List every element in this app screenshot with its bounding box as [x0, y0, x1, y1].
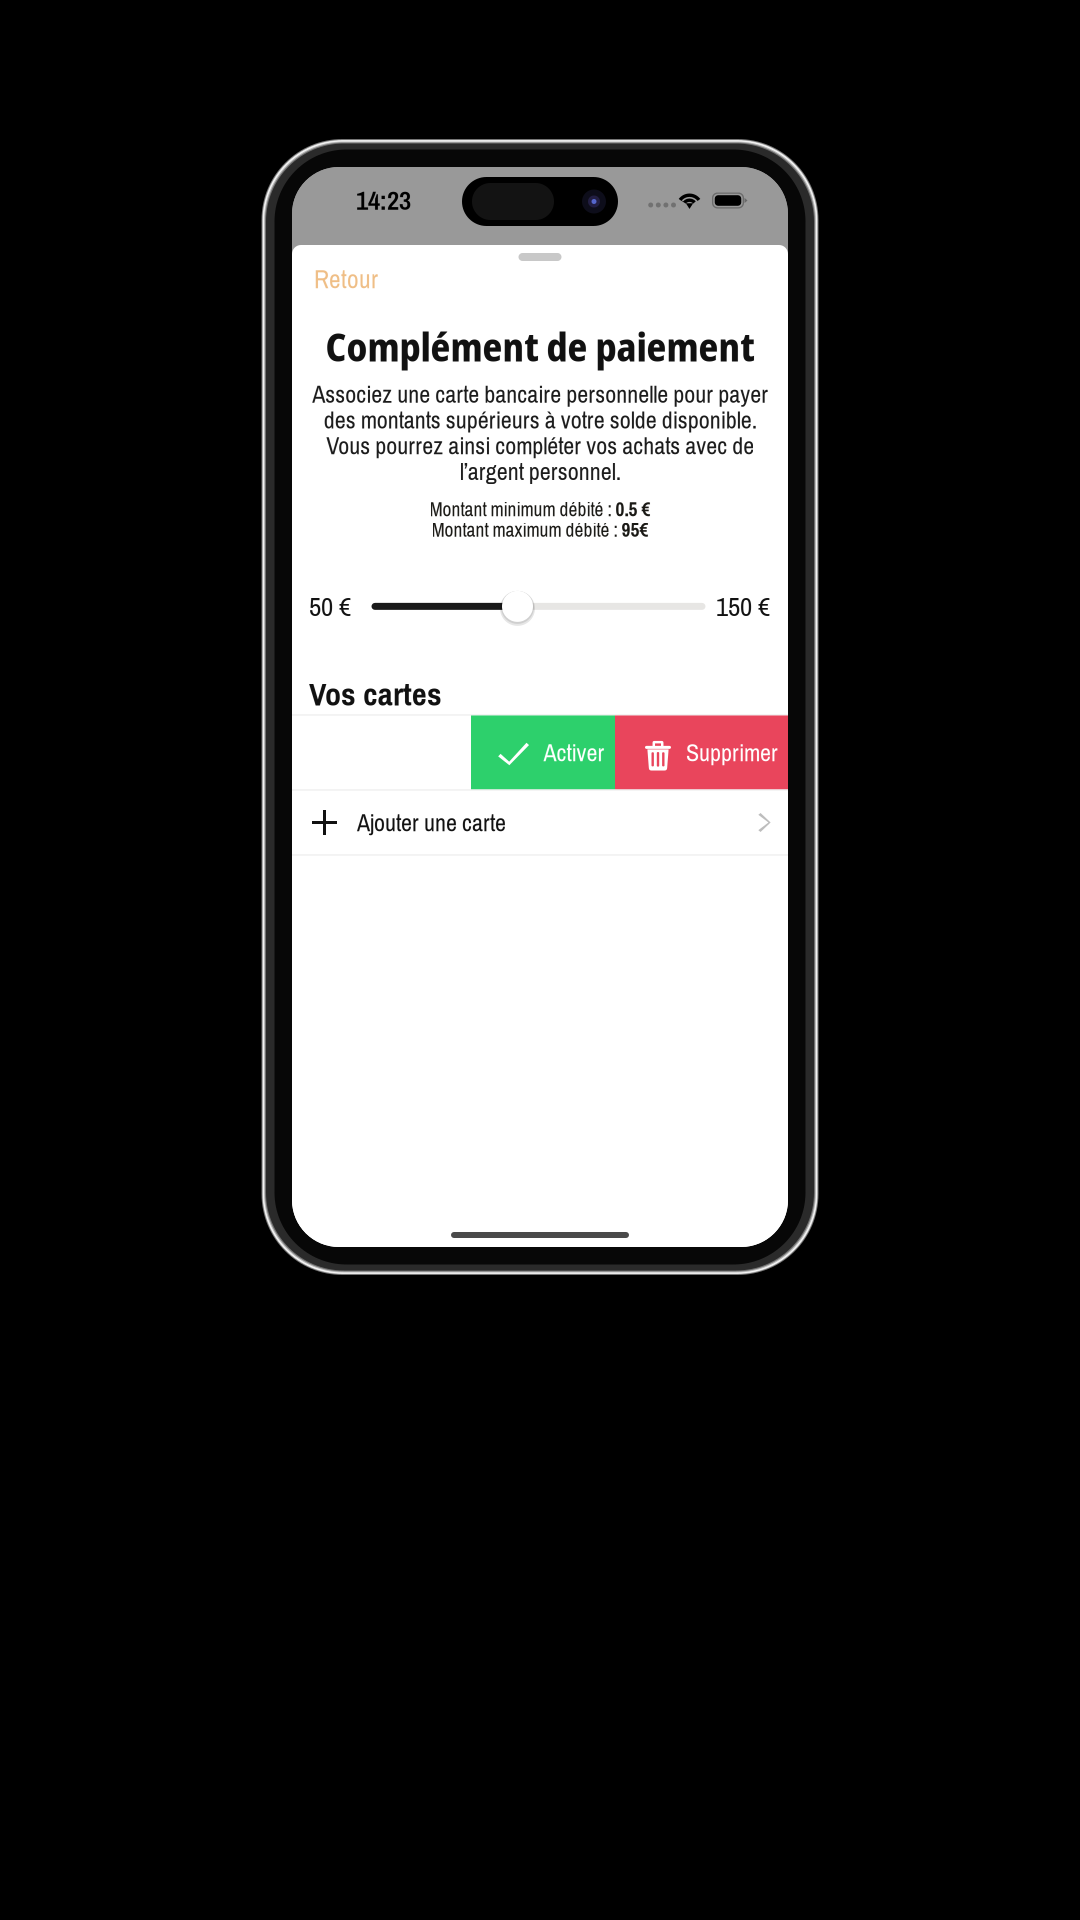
- staticText: Montant minimum débité : 0.5 €: [429, 497, 650, 522]
- staticText: 50 €: [309, 588, 351, 624]
- staticText: Retour: [314, 262, 378, 296]
- button[interactable]: Supprimer: [615, 715, 788, 789]
- staticText: 150 €: [716, 588, 770, 624]
- staticText: Vos cartes: [309, 672, 442, 715]
- button[interactable]: Retour: [292, 261, 788, 300]
- staticText: Associez une carte bancaire personnelle …: [312, 378, 768, 488]
- staticText: Complément de paiement: [325, 320, 754, 373]
- button[interactable]: Activer: [471, 715, 615, 789]
- staticText: Ajouter une carte: [357, 806, 506, 839]
- staticText: Activer: [543, 736, 604, 769]
- staticText: Montant maximum débité : 95€: [431, 517, 648, 542]
- staticText: 14:23: [356, 182, 411, 218]
- button[interactable]: Ajouter une carte: [292, 790, 788, 854]
- staticText: Supprimer: [686, 736, 778, 769]
